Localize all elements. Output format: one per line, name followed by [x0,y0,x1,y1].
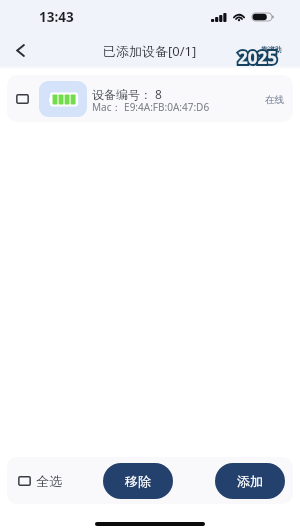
staticText: 靠谱助 [261,45,282,54]
staticText: 添加 [237,473,263,489]
button[interactable]: 全选 [18,463,62,499]
staticText: Mac： E9:4A:FB:0A:47:D6 [92,100,210,114]
button[interactable]: 添加 [215,463,285,499]
button[interactable]: Select device [16,93,29,104]
staticText: 13:43 [39,8,74,26]
button[interactable]: Back [5,35,35,65]
staticText: 全选 [36,473,62,489]
button[interactable]: 移除 [103,463,173,499]
button[interactable]: Select device [7,75,293,122]
staticText: 已添加设备[0/1] [103,42,197,60]
staticText: 在线 [265,94,284,106]
staticText: 2025 [238,46,277,69]
staticText: 设备编号： 8 [92,86,162,102]
staticText: 2025 [238,46,277,69]
staticText: 移除 [125,473,151,489]
